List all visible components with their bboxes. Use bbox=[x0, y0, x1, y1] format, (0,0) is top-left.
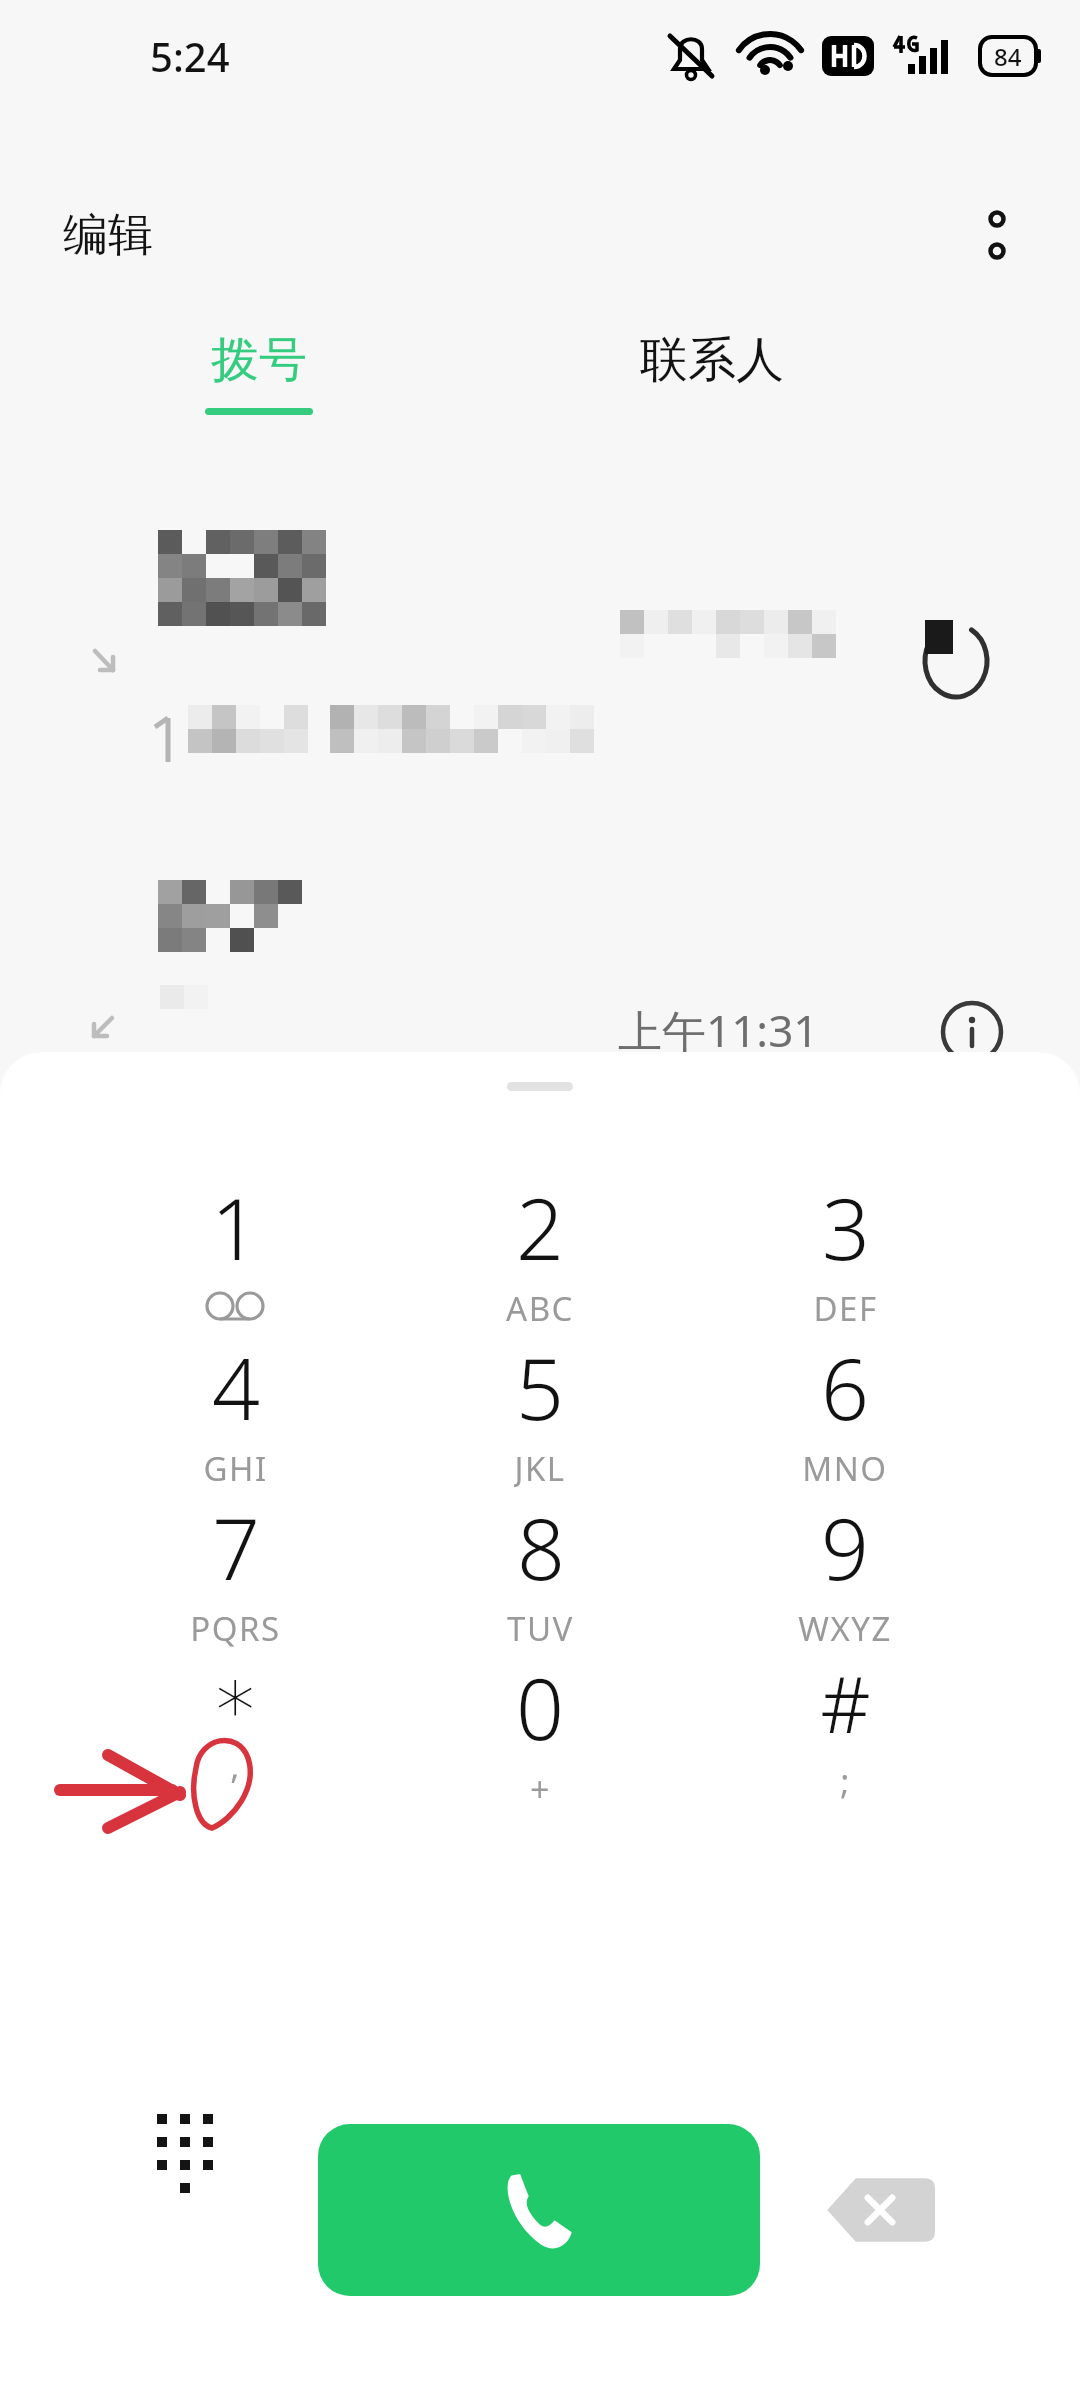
staticText: PQRS bbox=[190, 1606, 281, 1650]
button[interactable]: 8 bbox=[400, 1490, 680, 1650]
button[interactable]: 3 bbox=[705, 1170, 985, 1330]
staticText: + bbox=[530, 1766, 551, 1810]
staticText: 84 bbox=[994, 40, 1022, 73]
staticText: 8 bbox=[517, 1490, 565, 1604]
staticText: TUV bbox=[507, 1606, 574, 1650]
button[interactable]: 2 bbox=[400, 1170, 680, 1330]
staticText: GHI bbox=[203, 1446, 268, 1490]
staticText: 2 bbox=[516, 1170, 564, 1284]
staticText: ABC bbox=[506, 1286, 574, 1330]
button[interactable]: 编辑 bbox=[55, 197, 161, 274]
button[interactable]: 5 bbox=[400, 1330, 680, 1490]
button[interactable]: 6 bbox=[705, 1330, 985, 1490]
staticText: 上午11:31 bbox=[618, 1000, 819, 1060]
staticText: ; bbox=[840, 1758, 851, 1804]
staticText: 5 bbox=[516, 1330, 564, 1444]
button[interactable]: 9 bbox=[705, 1490, 985, 1650]
staticText: 7 bbox=[212, 1490, 260, 1604]
staticText: 3 bbox=[822, 1170, 870, 1284]
staticText: ∗ bbox=[211, 1650, 260, 1741]
staticText: 9 bbox=[821, 1490, 869, 1604]
staticText: WXYZ bbox=[798, 1606, 892, 1650]
button[interactable]: 1 bbox=[95, 1170, 375, 1330]
button[interactable]: Call details bbox=[940, 1000, 1004, 1064]
staticText: , bbox=[230, 1743, 241, 1789]
staticText: 编辑 bbox=[63, 207, 153, 264]
button[interactable]: Hide keypad bbox=[115, 2074, 255, 2214]
staticText: 6 bbox=[821, 1330, 869, 1444]
staticText: 联系人 bbox=[640, 330, 784, 390]
button[interactable]: 4 bbox=[95, 1330, 375, 1490]
staticText: MNO bbox=[802, 1446, 888, 1490]
button[interactable]: 联系人 bbox=[640, 330, 784, 390]
staticText: 0 bbox=[516, 1650, 564, 1764]
staticText: # bbox=[820, 1650, 871, 1756]
button[interactable]: Delete bbox=[800, 2144, 960, 2276]
staticText: 4 bbox=[212, 1330, 260, 1444]
staticText: JKL bbox=[514, 1446, 566, 1490]
staticText: DEF bbox=[813, 1286, 878, 1330]
button[interactable]: ∗ bbox=[95, 1650, 375, 1810]
staticText: 1 bbox=[211, 1170, 259, 1284]
button[interactable]: 7 bbox=[95, 1490, 375, 1650]
button[interactable]: 0 bbox=[400, 1650, 680, 1810]
staticText: 5:24 bbox=[150, 29, 230, 83]
button[interactable]: 拨号 bbox=[205, 330, 313, 415]
staticText: 拨号 bbox=[211, 330, 307, 390]
button[interactable]: # bbox=[705, 1650, 985, 1810]
button[interactable]: More options bbox=[952, 190, 1042, 280]
button[interactable]: Call bbox=[318, 2124, 760, 2296]
